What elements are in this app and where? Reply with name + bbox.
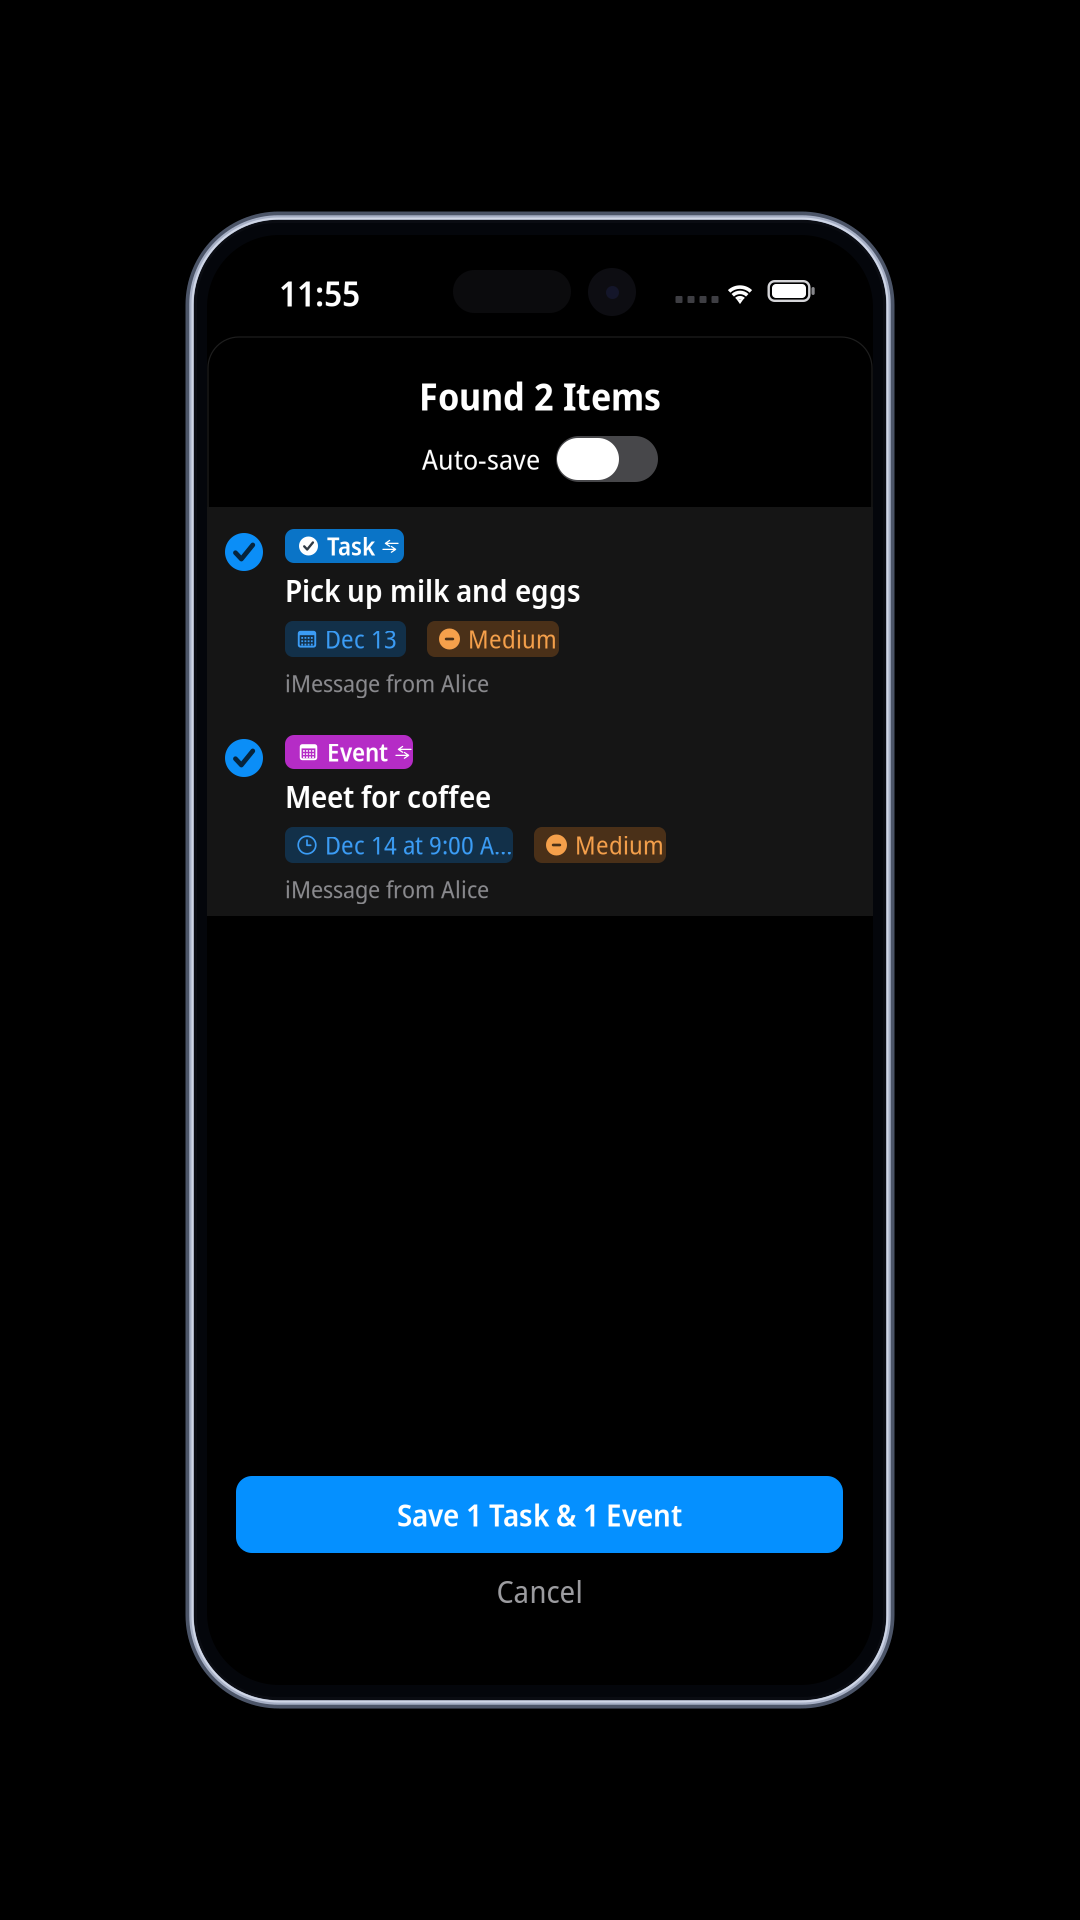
staticText: Task (327, 529, 375, 563)
staticText: 11:55 (279, 269, 360, 317)
button[interactable]: Event (285, 735, 413, 769)
staticText: iMessage from Alice (285, 667, 489, 699)
staticText: Save 1 Task & 1 Event (397, 1494, 682, 1535)
staticText: Event (327, 735, 388, 769)
button[interactable]: Cancel (236, 1566, 843, 1616)
staticText: Cancel (496, 1570, 582, 1612)
button[interactable]: Dec 13 (285, 621, 406, 657)
button[interactable]: Save 1 Task & 1 Event (236, 1476, 843, 1553)
button[interactable]: Auto-save (556, 436, 658, 482)
button[interactable]: Medium (534, 827, 666, 863)
staticText: Auto-save (422, 440, 540, 478)
button[interactable]: Deselect task (225, 533, 263, 571)
button[interactable]: Deselect event (225, 739, 263, 777)
staticText: Medium (575, 828, 664, 862)
staticText: Meet for coffee (285, 775, 491, 817)
button[interactable]: Medium (427, 621, 559, 657)
staticText: Dec 13 (325, 622, 397, 656)
staticText: Pick up milk and eggs (285, 569, 581, 611)
staticText: Medium (468, 622, 557, 656)
staticText: Found 2 Items (419, 371, 661, 421)
staticText: Dec 14 at 9:00 AM (325, 828, 513, 862)
button[interactable]: Dec 14 at 9:00 AM (285, 827, 513, 863)
staticText: iMessage from Alice (285, 873, 489, 905)
button[interactable]: Task (285, 529, 404, 563)
